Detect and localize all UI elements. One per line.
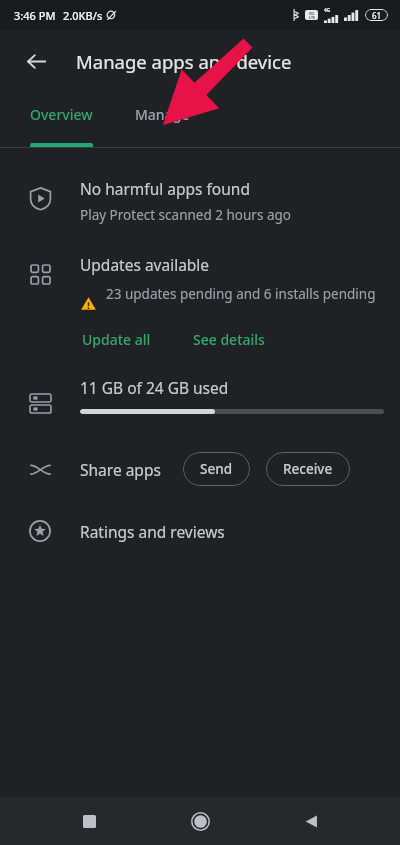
button[interactable]: Manage — [123, 92, 202, 136]
staticText: 23 updates pending and 6 installs pendin… — [106, 285, 376, 303]
button[interactable]: Overview — [18, 92, 105, 136]
staticText: 2.0KB/s — [63, 8, 103, 23]
staticText: Ratings and reviews — [80, 521, 225, 542]
staticText: Overview — [30, 105, 93, 124]
staticText: See details — [193, 330, 265, 349]
staticText: 11 GB of 24 GB used — [80, 377, 229, 398]
staticText: 4G — [324, 7, 331, 14]
button[interactable]: Home — [178, 799, 222, 843]
button[interactable]: Send — [183, 452, 250, 486]
staticText: Play Protect scanned 2 hours ago — [80, 206, 291, 224]
button[interactable]: 11 GB of 24 GB used — [0, 377, 400, 421]
staticText: 3:46 PM — [14, 8, 56, 23]
staticText: Receive — [283, 460, 333, 478]
staticText: Updates available — [80, 254, 210, 275]
staticText: Manage — [135, 105, 190, 124]
button[interactable]: Ratings and reviews — [0, 513, 400, 549]
staticText: No harmful apps found — [80, 178, 250, 199]
button[interactable]: Recent apps — [67, 799, 111, 843]
staticText: Update all — [82, 330, 151, 349]
staticText: VO LTE — [309, 11, 315, 20]
button[interactable]: Back — [289, 799, 333, 843]
button[interactable]: Receive — [266, 452, 350, 486]
button[interactable]: No harmful apps found — [0, 178, 400, 224]
staticText: 61 — [372, 10, 382, 21]
staticText: Share apps — [80, 459, 161, 480]
button[interactable]: Update all — [80, 326, 153, 353]
staticText: Send — [200, 460, 233, 478]
staticText: Manage apps and device — [76, 49, 292, 74]
button[interactable]: See details — [191, 326, 267, 353]
button[interactable]: Back — [16, 41, 56, 81]
